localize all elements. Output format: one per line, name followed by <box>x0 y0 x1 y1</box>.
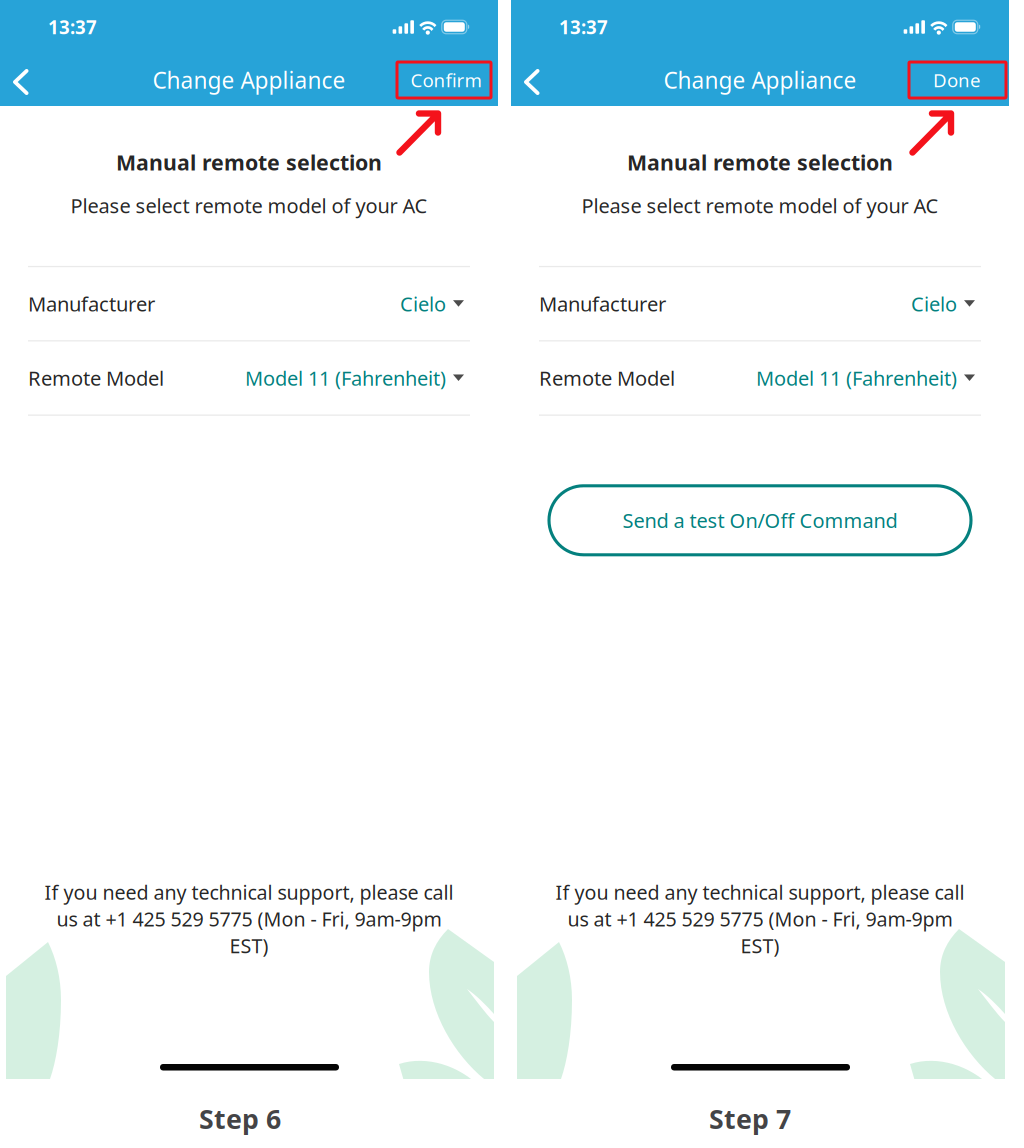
staticText: Manufacturer <box>28 290 155 317</box>
staticText: Model 11 (Fahrenheit) <box>245 364 446 392</box>
staticText: us at +1 425 529 5775 (Mon - Fri, 9am-9p… <box>56 905 441 932</box>
button[interactable]: Confirm <box>400 62 492 97</box>
staticText: Confirm <box>410 68 481 92</box>
staticText: If you need any technical support, pleas… <box>44 879 453 905</box>
button[interactable]: Remote Model <box>0 341 498 414</box>
staticText: Please select remote model of your AC <box>581 192 938 219</box>
staticText: If you need any technical support, pleas… <box>555 879 964 905</box>
staticText: Remote Model <box>539 364 675 392</box>
staticText: Cielo <box>400 290 446 317</box>
staticText: us at +1 425 529 5775 (Mon - Fri, 9am-9p… <box>567 905 952 932</box>
staticText: Manufacturer <box>539 290 666 317</box>
staticText: Remote Model <box>28 364 164 392</box>
button[interactable]: Remote Model <box>511 341 1009 414</box>
staticText: Manual remote selection <box>116 148 382 176</box>
button[interactable]: Done <box>911 62 1003 97</box>
staticText: Model 11 (Fahrenheit) <box>756 364 957 392</box>
staticText: EST) <box>740 932 779 959</box>
staticText: Manual remote selection <box>627 148 893 176</box>
button[interactable]: Send a test On/Off Command <box>549 486 971 555</box>
button[interactable]: Manufacturer <box>0 267 498 340</box>
staticText: EST) <box>229 932 268 959</box>
staticText: Change Appliance <box>663 65 856 95</box>
staticText: Done <box>933 68 981 92</box>
staticText: 13:37 <box>48 15 97 39</box>
button[interactable]: Back <box>511 56 552 104</box>
staticText: 13:37 <box>559 15 608 39</box>
button[interactable]: Back <box>0 56 41 104</box>
staticText: Send a test On/Off Command <box>622 507 897 534</box>
staticText: Step 7 <box>709 1101 791 1136</box>
staticText: Cielo <box>911 290 957 317</box>
staticText: Please select remote model of your AC <box>70 192 427 219</box>
button[interactable]: Manufacturer <box>511 267 1009 340</box>
staticText: Change Appliance <box>152 65 345 95</box>
staticText: Step 6 <box>199 1101 281 1136</box>
